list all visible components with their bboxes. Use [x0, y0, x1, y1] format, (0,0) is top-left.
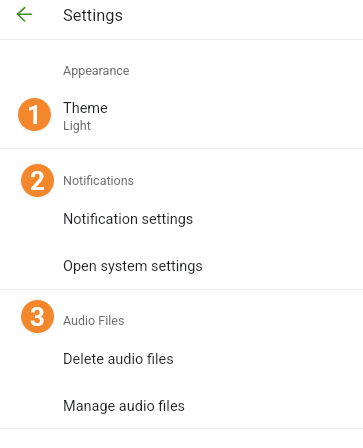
- button[interactable]: Notification settings: [0, 196, 363, 243]
- staticText: Appearance: [63, 63, 130, 78]
- staticText: Light: [63, 118, 91, 133]
- button[interactable]: Manage audio files: [0, 383, 363, 430]
- staticText: Theme: [63, 100, 108, 117]
- button[interactable]: Theme: [0, 92, 363, 148]
- button[interactable]: Back: [5, 2, 29, 26]
- staticText: Open system settings: [63, 258, 203, 275]
- staticText: Audio Files: [63, 313, 125, 328]
- staticText: 3: [30, 302, 45, 332]
- staticText: 2: [30, 166, 45, 196]
- button[interactable]: Open system settings: [0, 243, 363, 290]
- staticText: Notification settings: [63, 211, 194, 228]
- staticText: Notifications: [63, 173, 135, 188]
- staticText: 1: [27, 100, 42, 130]
- staticText: Delete audio files: [63, 351, 174, 368]
- staticText: Manage audio files: [63, 398, 186, 415]
- staticText: Settings: [63, 6, 123, 25]
- button[interactable]: Delete audio files: [0, 336, 363, 383]
